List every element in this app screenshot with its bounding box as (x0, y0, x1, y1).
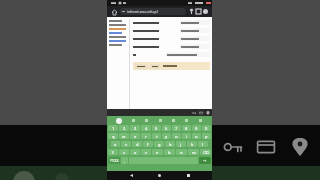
button[interactable]: i (182, 133, 191, 139)
button[interactable]: More options (202, 8, 209, 15)
button[interactable]: Payment methods (253, 134, 279, 160)
button[interactable]: Back (127, 171, 136, 180)
button[interactable]: Keyboard tool 4 (184, 118, 189, 123)
staticText: , (124, 158, 126, 163)
button[interactable]: s (121, 141, 131, 147)
staticText: 1 (112, 126, 115, 131)
staticText: w (122, 134, 126, 139)
button[interactable]: 6 (162, 125, 171, 131)
button[interactable]: y (162, 133, 171, 139)
button[interactable]: 9 (192, 125, 201, 131)
button[interactable]: z (119, 149, 129, 155)
button[interactable]: d (132, 141, 142, 147)
button[interactable]: Passwords (220, 134, 246, 160)
button[interactable]: → (199, 157, 211, 164)
button[interactable]: infonet.wsu.edu.pl (120, 8, 186, 15)
staticText: l (202, 142, 204, 147)
staticText: 0 (205, 126, 208, 131)
button[interactable]: u (172, 133, 181, 139)
button[interactable]: Share (188, 8, 195, 15)
button[interactable]: j (176, 141, 186, 147)
button[interactable]: Home (110, 8, 118, 16)
button[interactable] (166, 52, 210, 57)
staticText: k (191, 142, 194, 147)
staticText: z (123, 150, 125, 155)
button[interactable] (180, 28, 210, 33)
button[interactable] (135, 64, 147, 69)
button[interactable]: 3 (130, 125, 140, 131)
staticText: 2 (123, 126, 126, 131)
staticText: 5 (155, 126, 158, 131)
button[interactable]: Keyboard tool 2 (158, 118, 163, 123)
button[interactable]: ⌫ (200, 149, 211, 155)
button[interactable]: a (111, 141, 120, 147)
button[interactable]: Keyboard tool 0 (131, 118, 136, 123)
button[interactable]: n (176, 149, 187, 155)
button[interactable] (180, 20, 210, 25)
button[interactable]: w (119, 133, 129, 139)
button[interactable]: Recent apps (184, 171, 193, 180)
button[interactable]: Address (205, 110, 210, 115)
staticText: ?123 (110, 158, 119, 163)
button[interactable]: Passwords (191, 110, 196, 115)
staticText: infonet.wsu.edu.pl (127, 9, 158, 14)
button[interactable]: o (192, 133, 201, 139)
button[interactable]: ?123 (108, 157, 120, 164)
staticText: m (192, 150, 196, 155)
button[interactable]: q (108, 133, 118, 139)
button[interactable]: 1 (108, 125, 118, 131)
button[interactable]: e (130, 133, 140, 139)
button[interactable]: ⇧ (108, 149, 118, 155)
staticText: 4 (145, 126, 148, 131)
staticText: x (134, 150, 137, 155)
button[interactable]: x (130, 149, 140, 155)
staticText: u (175, 134, 178, 139)
staticText: e (134, 134, 137, 139)
button[interactable]: Home (155, 171, 164, 180)
button[interactable]: Payment (198, 110, 203, 115)
button[interactable]: r (141, 133, 151, 139)
button[interactable]: Keyboard tool 1 (144, 118, 149, 123)
button[interactable] (180, 36, 210, 41)
button[interactable]: c (141, 149, 151, 155)
button[interactable]: k (187, 141, 197, 147)
button[interactable]: 0 (202, 125, 211, 131)
button[interactable]: , (121, 157, 128, 164)
button[interactable]: 2 (119, 125, 129, 131)
button[interactable]: p (202, 133, 211, 139)
button[interactable]: t (152, 133, 161, 139)
button[interactable]: Addresses (287, 134, 313, 160)
button[interactable] (150, 64, 160, 69)
button[interactable]: m (188, 149, 199, 155)
button[interactable]: f (143, 141, 153, 147)
button[interactable]: Tabs (195, 8, 202, 15)
button[interactable]: 5 (152, 125, 161, 131)
staticText: s (125, 142, 127, 147)
button[interactable]: v (152, 149, 163, 155)
button[interactable]: h (165, 141, 175, 147)
button[interactable]: g (154, 141, 164, 147)
staticText: o (195, 134, 198, 139)
button[interactable]: 8 (182, 125, 191, 131)
button[interactable]: Keyboard settings (116, 118, 122, 124)
button[interactable] (180, 44, 210, 49)
staticText: d (136, 142, 139, 147)
staticText: g (158, 142, 161, 147)
button[interactable]: 7 (172, 125, 181, 131)
button[interactable]: b (164, 149, 175, 155)
staticText: 9 (195, 126, 198, 131)
button[interactable]: Keyboard tool 5 (198, 118, 203, 123)
button[interactable]: 4 (141, 125, 151, 131)
staticText: q (112, 134, 115, 139)
button[interactable]: Keyboard tool 3 (171, 118, 176, 123)
staticText: j (180, 142, 182, 147)
button[interactable]: l (198, 141, 208, 147)
